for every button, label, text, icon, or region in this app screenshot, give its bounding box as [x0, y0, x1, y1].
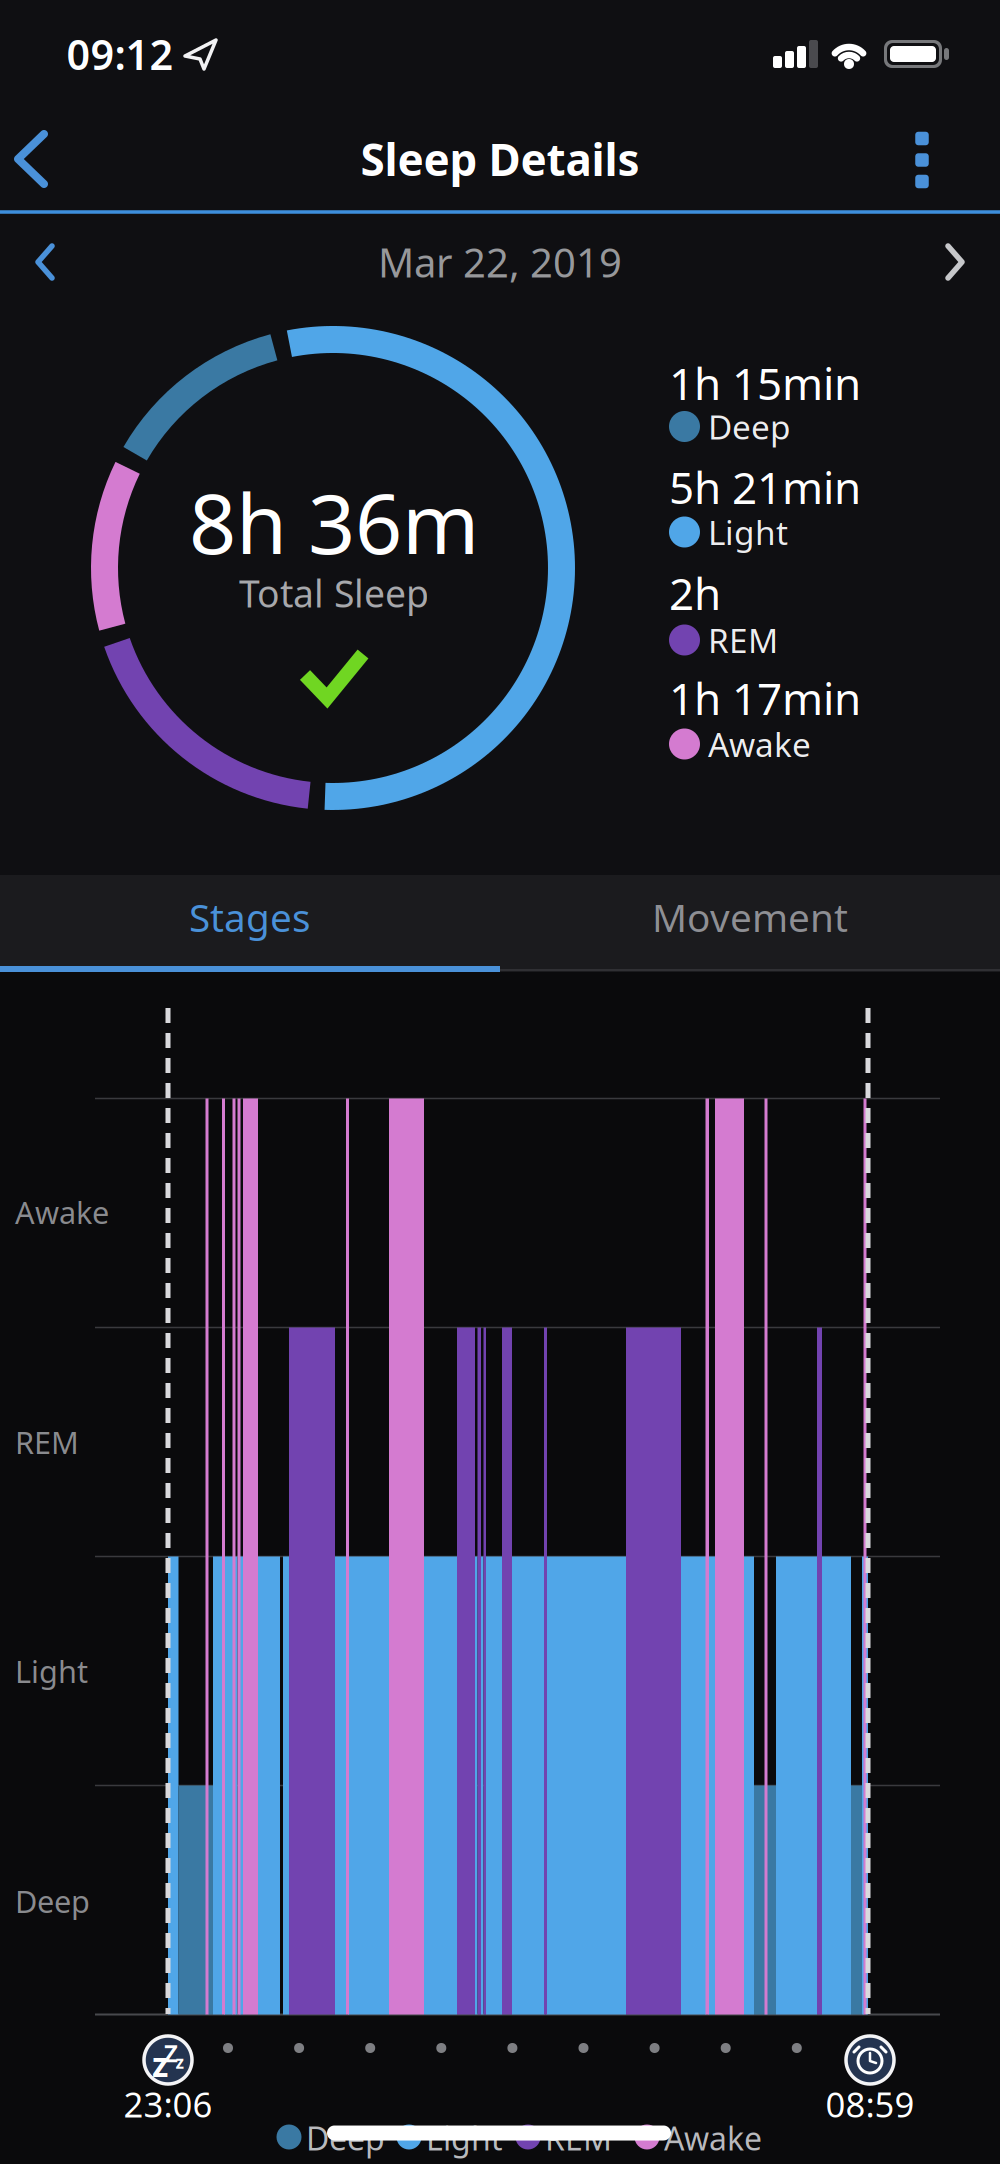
button[interactable]: Bedtime — [141, 2033, 195, 2087]
button[interactable]: Alarm — [843, 2033, 897, 2087]
staticText: 23:06 — [123, 2081, 212, 2127]
staticText: Z — [164, 2037, 178, 2069]
staticText: Awake — [708, 722, 811, 766]
staticText: Light — [15, 1651, 88, 1691]
staticText: REM — [15, 1422, 79, 1462]
staticText: REM — [708, 618, 778, 662]
staticText: z — [175, 2050, 184, 2073]
staticText: Sleep Details — [360, 130, 639, 188]
staticText: 1h 15min — [669, 354, 861, 412]
staticText: Deep — [15, 1881, 90, 1921]
staticText: z — [152, 2042, 168, 2086]
button[interactable]: Stages — [0, 869, 500, 964]
staticText: Mar 22, 2019 — [378, 235, 622, 288]
staticText: 2h — [669, 564, 721, 622]
staticText: 09:12 — [66, 27, 173, 81]
staticText: Stages — [189, 891, 311, 943]
staticText: 5h 21min — [669, 458, 861, 516]
button[interactable]: More options — [892, 121, 952, 198]
staticText: Light — [426, 2117, 503, 2159]
staticText: Movement — [652, 891, 848, 943]
button[interactable]: Back — [0, 128, 70, 190]
button[interactable]: Movement — [500, 869, 1000, 964]
staticText: Deep — [708, 404, 791, 449]
staticText: REM — [545, 2117, 612, 2159]
staticText: Awake — [664, 2117, 762, 2159]
staticText: 8h 36m — [189, 467, 479, 577]
staticText: 1h 17min — [669, 669, 861, 727]
button[interactable]: Next day — [930, 242, 970, 282]
staticText: Deep — [306, 2117, 385, 2159]
staticText: 08:59 — [825, 2081, 914, 2127]
button[interactable]: Previous day — [30, 242, 70, 282]
staticText: Light — [708, 510, 788, 554]
staticText: Total Sleep — [239, 568, 429, 618]
staticText: Awake — [15, 1192, 109, 1232]
